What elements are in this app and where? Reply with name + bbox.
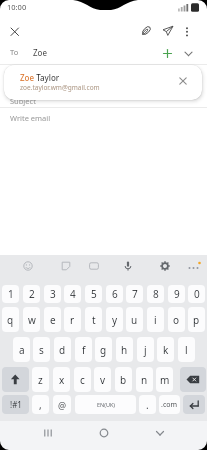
staticText: 9 bbox=[174, 287, 180, 301]
staticText: m bbox=[160, 373, 170, 387]
staticText: !#1 bbox=[10, 399, 22, 410]
button[interactable] bbox=[180, 367, 206, 392]
staticText: .com bbox=[161, 400, 178, 410]
button[interactable]: l bbox=[178, 337, 195, 362]
button[interactable] bbox=[2, 367, 29, 392]
button[interactable] bbox=[139, 24, 153, 38]
button[interactable]: EN(UK) bbox=[75, 395, 136, 414]
button[interactable] bbox=[40, 425, 56, 441]
button[interactable]: 7 bbox=[126, 285, 143, 303]
button[interactable]: z bbox=[32, 367, 49, 392]
staticText: i bbox=[154, 313, 157, 327]
button[interactable] bbox=[160, 46, 175, 61]
staticText: zoe.taylor.wm@gmail.com bbox=[20, 83, 100, 92]
staticText: @ bbox=[58, 399, 67, 411]
button[interactable]: !#1 bbox=[2, 395, 29, 414]
staticText: y bbox=[112, 313, 118, 327]
button[interactable]: . bbox=[139, 395, 156, 414]
button[interactable]: 0 bbox=[188, 285, 205, 303]
button[interactable]: p bbox=[188, 307, 205, 332]
button[interactable]: t bbox=[85, 307, 102, 332]
button[interactable]: .com bbox=[159, 395, 180, 414]
staticText: . bbox=[146, 398, 149, 412]
button[interactable] bbox=[158, 259, 172, 273]
staticText: 10:00 bbox=[7, 2, 27, 12]
button[interactable] bbox=[87, 259, 101, 273]
button[interactable]: m bbox=[156, 367, 173, 392]
button[interactable] bbox=[152, 425, 168, 441]
button[interactable] bbox=[175, 73, 191, 89]
button[interactable]: r bbox=[64, 307, 81, 332]
staticText: d bbox=[59, 343, 66, 357]
button[interactable]: o bbox=[168, 307, 185, 332]
button[interactable]: 3 bbox=[44, 285, 61, 303]
staticText: 0 bbox=[194, 287, 200, 301]
button[interactable]: 2 bbox=[23, 285, 40, 303]
staticText: 3 bbox=[50, 287, 56, 301]
staticText: Zoe Taylor bbox=[20, 72, 60, 83]
button[interactable]: 6 bbox=[106, 285, 123, 303]
staticText: z bbox=[38, 373, 43, 387]
button[interactable]: f bbox=[75, 337, 92, 362]
staticText: h bbox=[121, 343, 128, 357]
button[interactable]: j bbox=[137, 337, 154, 362]
button[interactable] bbox=[181, 25, 193, 39]
button[interactable]: 8 bbox=[147, 285, 164, 303]
button[interactable]: x bbox=[53, 367, 70, 392]
button[interactable]: 1 bbox=[2, 285, 19, 303]
staticText: g bbox=[100, 343, 107, 357]
button[interactable] bbox=[121, 259, 135, 273]
staticText: Write email bbox=[10, 113, 51, 123]
button[interactable]: a bbox=[13, 337, 30, 362]
button[interactable]: i bbox=[147, 307, 164, 332]
staticText: t bbox=[92, 313, 96, 327]
button[interactable] bbox=[59, 259, 73, 273]
staticText: x bbox=[59, 373, 65, 387]
button[interactable]: @ bbox=[53, 395, 71, 414]
button[interactable] bbox=[96, 425, 112, 441]
button[interactable]: d bbox=[54, 337, 71, 362]
button[interactable]: k bbox=[157, 337, 174, 362]
button[interactable] bbox=[181, 46, 196, 61]
staticText: w bbox=[28, 313, 36, 327]
staticText: f bbox=[82, 343, 86, 357]
button[interactable]: w bbox=[23, 307, 40, 332]
button[interactable]: g bbox=[95, 337, 112, 362]
button[interactable] bbox=[21, 259, 35, 273]
staticText: p bbox=[193, 313, 200, 327]
staticText: k bbox=[163, 343, 169, 357]
staticText: , bbox=[39, 398, 42, 412]
button[interactable] bbox=[161, 24, 175, 38]
button[interactable]: 9 bbox=[168, 285, 185, 303]
button[interactable]: h bbox=[116, 337, 133, 362]
button[interactable]: 4 bbox=[64, 285, 81, 303]
button[interactable]: Zoe Taylor bbox=[4, 65, 202, 100]
button[interactable]: e bbox=[44, 307, 61, 332]
staticText: v bbox=[100, 373, 106, 387]
button[interactable]: q bbox=[2, 307, 19, 332]
staticText: Subject bbox=[10, 96, 36, 106]
staticText: c bbox=[80, 373, 85, 387]
button[interactable]: s bbox=[33, 337, 50, 362]
button[interactable]: u bbox=[126, 307, 143, 332]
staticText: 5 bbox=[91, 287, 97, 301]
staticText: Zoe bbox=[33, 47, 47, 58]
staticText: 1 bbox=[8, 287, 14, 301]
button[interactable] bbox=[183, 395, 205, 414]
button[interactable]: c bbox=[74, 367, 91, 392]
button[interactable]: v bbox=[94, 367, 111, 392]
staticText: 6 bbox=[112, 287, 118, 301]
button[interactable] bbox=[186, 259, 202, 273]
staticText: l bbox=[185, 343, 188, 357]
button[interactable]: n bbox=[136, 367, 153, 392]
button[interactable]: y bbox=[106, 307, 123, 332]
button[interactable]: , bbox=[32, 395, 49, 414]
button[interactable]: b bbox=[115, 367, 132, 392]
staticText: 7 bbox=[132, 287, 138, 301]
staticText: EN(UK) bbox=[97, 401, 115, 408]
button[interactable]: 5 bbox=[85, 285, 102, 303]
staticText: 2 bbox=[29, 287, 35, 301]
button[interactable] bbox=[8, 25, 22, 39]
staticText: To bbox=[10, 47, 19, 57]
staticText: s bbox=[39, 343, 44, 357]
